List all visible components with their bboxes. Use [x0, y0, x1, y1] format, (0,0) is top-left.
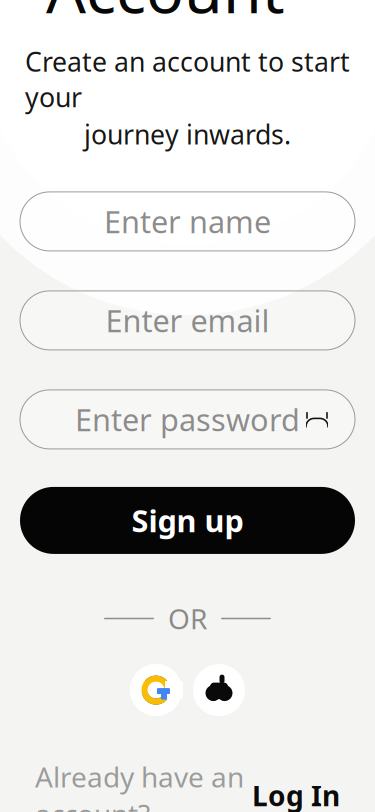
button[interactable]: Enter password — [20, 390, 355, 449]
staticText: Sign up — [131, 500, 243, 541]
staticText: Log In — [252, 777, 340, 812]
button[interactable]: Enter email — [20, 291, 355, 350]
staticText: Enter email — [105, 300, 269, 341]
staticText: journey inwards. — [84, 116, 291, 152]
button[interactable]: Enter name — [20, 192, 355, 251]
staticText: Enter name — [104, 201, 271, 242]
button[interactable]: Already have an account? — [25, 752, 350, 812]
button[interactable]: Sign up with Google — [130, 664, 182, 716]
staticText: Create an account to start your — [25, 44, 350, 114]
button[interactable]: Sign up with Apple — [193, 664, 245, 716]
staticText: Create an Account — [46, 0, 329, 32]
staticText: OR — [168, 600, 207, 637]
staticText: Already have an account? — [35, 758, 244, 812]
button[interactable]: Sign up — [20, 487, 355, 554]
staticText: Enter password — [75, 399, 300, 440]
